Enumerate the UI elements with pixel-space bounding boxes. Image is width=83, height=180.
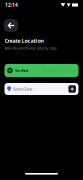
- staticText: Select Zone: [13, 86, 32, 92]
- button[interactable]: Back: [4, 19, 18, 32]
- staticText: Add info and things step by step: [4, 46, 56, 50]
- staticText: Department of Culture: [42, 68, 76, 73]
- staticText: Create Location: [4, 37, 43, 44]
- staticText: Verified: [15, 68, 28, 73]
- staticText: 12:14: [5, 2, 18, 8]
- button[interactable]: Add zone: [68, 85, 76, 93]
- button[interactable]: Verified: [4, 64, 78, 77]
